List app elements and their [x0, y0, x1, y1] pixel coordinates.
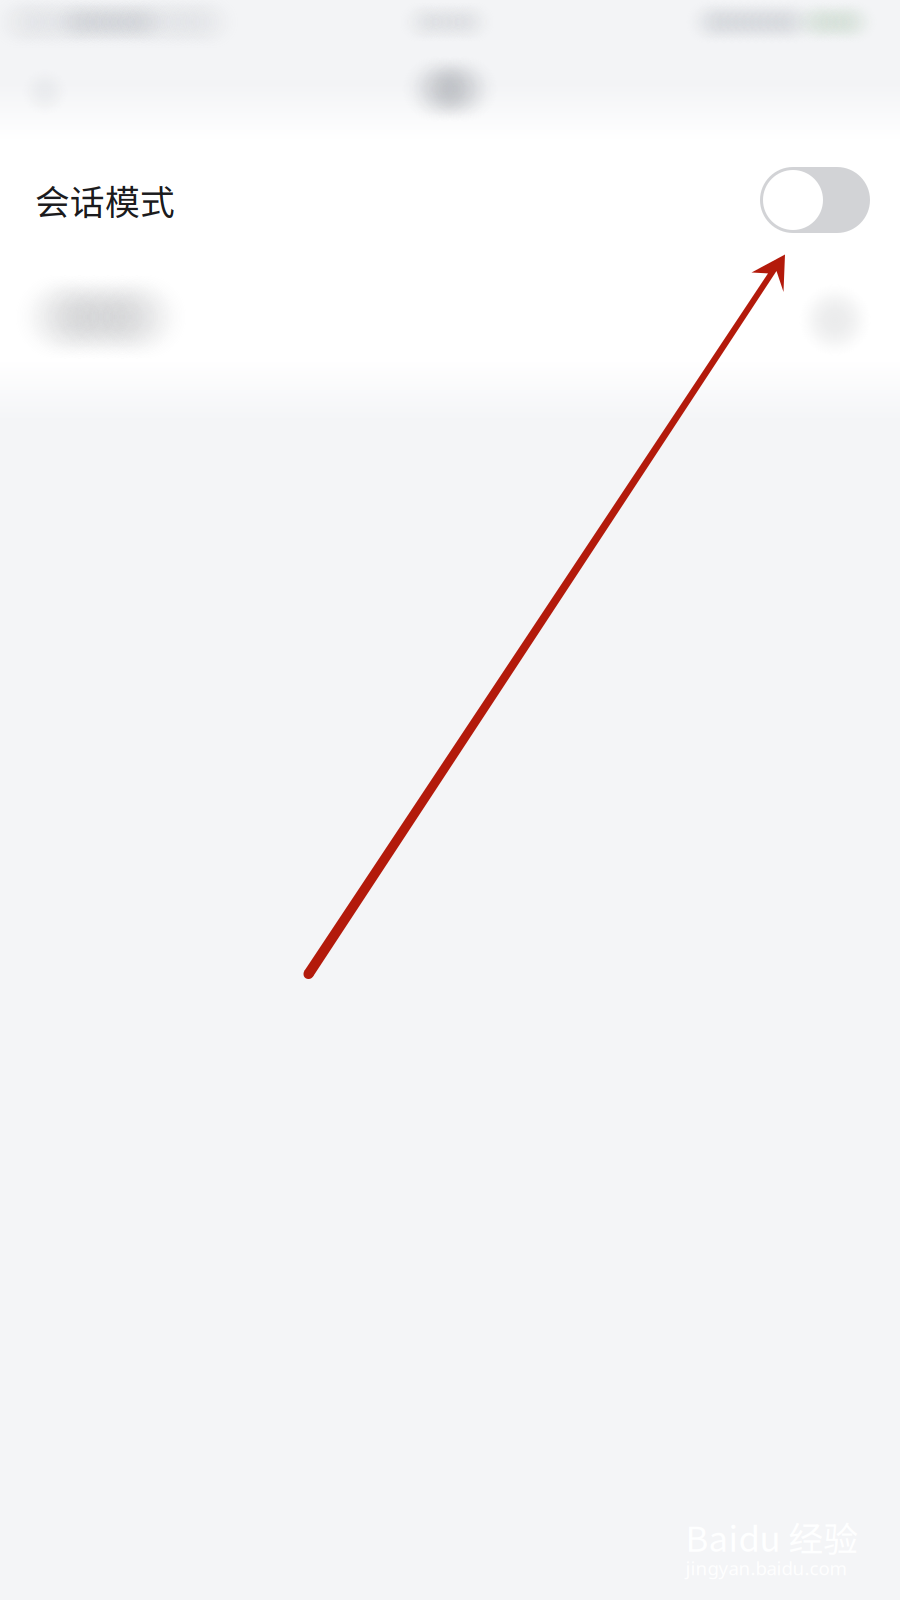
staticText: 会话模式: [35, 175, 175, 225]
staticText: jingyan.baidu.com: [685, 1556, 846, 1580]
button[interactable]: 会话模式: [0, 138, 900, 262]
staticText: Baidu 经验: [685, 1511, 858, 1562]
